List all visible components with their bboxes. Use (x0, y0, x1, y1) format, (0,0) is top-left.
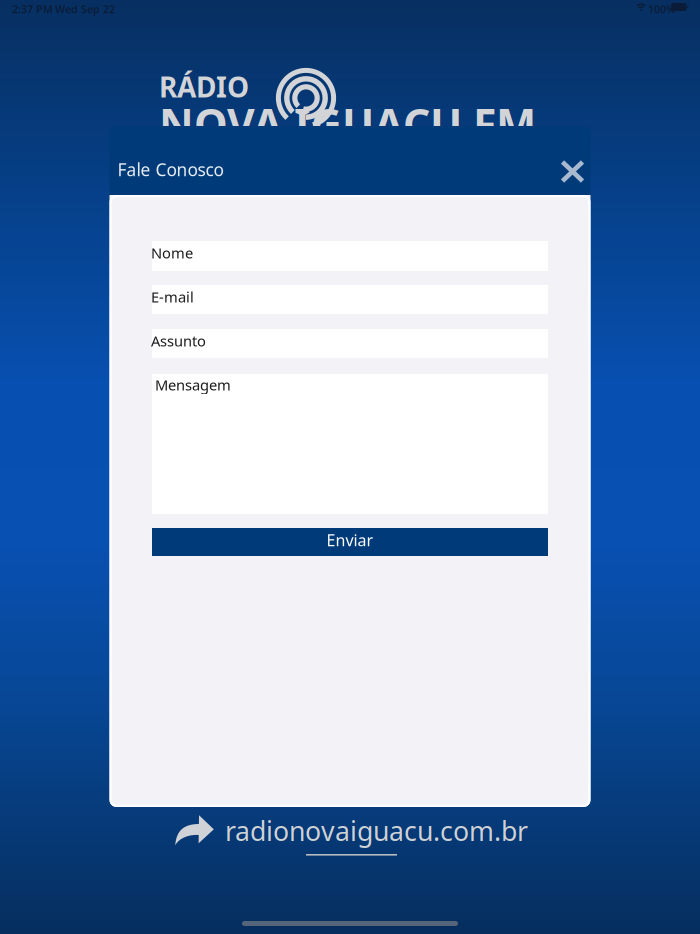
button[interactable]: radionovaiguacu.com.br (175, 810, 528, 851)
button[interactable]: Assunto (152, 329, 548, 358)
staticText: Nome (151, 243, 193, 262)
staticText: 2:37 PM (12, 2, 53, 16)
staticText: E-mail (151, 287, 194, 306)
button[interactable]: Mensagem (152, 374, 548, 514)
button[interactable]: Home (242, 915, 458, 932)
staticText: Wed Sep 22 (55, 2, 115, 16)
staticText: radionovaiguacu.com.br (225, 813, 528, 848)
staticText: NOVA IGUAÇU FM (159, 95, 536, 152)
button[interactable]: Nome (152, 241, 548, 271)
staticText: RÁDIO (159, 68, 249, 105)
staticText: 100% (648, 2, 675, 16)
staticText: Enviar (326, 529, 373, 551)
button[interactable]: Enviar (152, 528, 548, 556)
button[interactable]: Close (559, 159, 585, 184)
button[interactable]: E-mail (152, 285, 548, 314)
staticText: Assunto (151, 331, 206, 350)
staticText: Mensagem (155, 375, 231, 394)
staticText: Fale Conosco (117, 158, 223, 181)
